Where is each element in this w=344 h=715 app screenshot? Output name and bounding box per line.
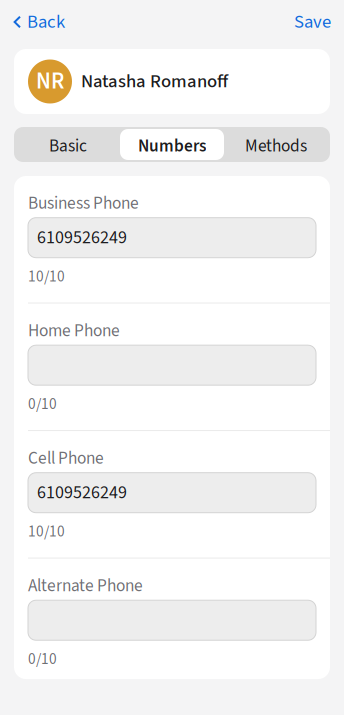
staticText: Methods [245,134,307,158]
button[interactable]: Back [5,1,73,43]
staticText: 0/10 [28,648,57,670]
staticText: Home Phone [28,318,120,343]
staticText: 0/10 [28,393,57,415]
staticText: Basic [49,134,87,158]
staticText: Natasha Romanoff [81,68,228,95]
staticText: Numbers [138,134,206,158]
button[interactable]: Methods [224,129,328,160]
staticText: 10/10 [28,521,65,542]
button[interactable]: Numbers [120,129,224,160]
staticText: Save [294,9,331,35]
staticText: Cell Phone [28,446,104,471]
staticText: 6109526249 [37,480,127,505]
button[interactable]: Basic [16,129,120,160]
staticText: 6109526249 [37,225,127,250]
staticText: Business Phone [28,191,139,216]
staticText: Back [27,9,65,35]
staticText: 10/10 [28,266,65,287]
button[interactable]: Save [286,1,339,43]
staticText: NR [36,65,64,98]
staticText: Alternate Phone [28,573,143,598]
